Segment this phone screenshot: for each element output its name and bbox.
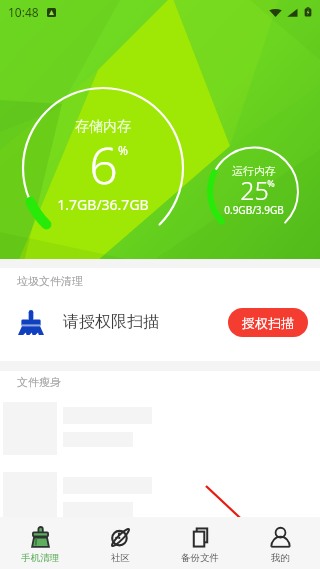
staticText: %: [118, 142, 128, 158]
staticText: 1.7GB/36.7GB: [57, 195, 149, 214]
staticText: 文件瘦身: [17, 375, 61, 389]
staticText: 我的: [271, 552, 290, 564]
button[interactable]: 备份文件: [160, 517, 240, 569]
staticText: 垃圾文件清理: [17, 274, 83, 288]
staticText: 备份文件: [181, 552, 219, 564]
button[interactable]: 请授权限扫描: [0, 294, 320, 350]
button[interactable]: 手机清理: [0, 517, 80, 569]
staticText: 10:48: [8, 4, 39, 20]
staticText: 社区: [111, 552, 130, 564]
button[interactable]: 授权扫描: [228, 308, 308, 337]
staticText: 存储内存: [75, 118, 131, 136]
staticText: %: [267, 177, 275, 189]
staticText: 0.9GB/3.9GB: [224, 203, 284, 217]
staticText: 6: [89, 131, 118, 199]
staticText: 25: [240, 173, 269, 207]
staticText: 授权扫描: [242, 315, 294, 331]
staticText: 请授权限扫描: [63, 312, 159, 332]
staticText: 手机清理: [21, 552, 59, 564]
button[interactable]: 我的: [240, 517, 320, 569]
button[interactable]: 社区: [80, 517, 160, 569]
staticText: 运行内存: [232, 164, 276, 178]
